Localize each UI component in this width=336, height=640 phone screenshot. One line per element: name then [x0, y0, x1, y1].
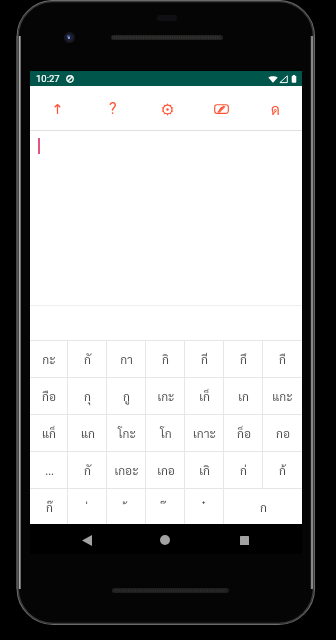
button[interactable]: กา [107, 341, 146, 377]
staticText: เกะ [157, 388, 175, 404]
staticText: ? [109, 99, 117, 118]
staticText: ก่ [240, 462, 247, 478]
button[interactable]: กุ [68, 378, 107, 414]
button[interactable]: ก้ [263, 452, 302, 488]
staticText: กอ [276, 425, 290, 441]
staticText: ก็อ [237, 425, 251, 441]
staticText: กู [123, 388, 130, 404]
button[interactable]: Back [77, 530, 97, 550]
button[interactable]: เก็ [185, 378, 224, 414]
button[interactable]: Settings [140, 86, 194, 130]
staticText: ก [260, 499, 267, 515]
staticText: กั [84, 351, 91, 367]
staticText: ด [271, 99, 280, 118]
button[interactable]: เกะ [146, 378, 185, 414]
button[interactable]: ๊ [146, 489, 185, 525]
staticText: เกอะ [114, 462, 139, 478]
button[interactable]: Help [85, 86, 140, 130]
staticText: แก็ [42, 425, 56, 441]
button[interactable]: ้ [107, 489, 146, 525]
button[interactable]: กือ [30, 378, 68, 414]
button[interactable]: กั [68, 452, 107, 488]
button[interactable]: เกาะ [185, 415, 224, 451]
staticText: โกะ [118, 425, 136, 441]
staticText: กือ [42, 388, 56, 404]
staticText: แกะ [272, 388, 293, 404]
button[interactable]: เก [224, 378, 263, 414]
button[interactable]: Thai input [248, 86, 302, 130]
button[interactable]: ก่ [224, 452, 263, 488]
button[interactable]: ๋ [185, 489, 224, 525]
button[interactable]: Keyboard layout [194, 86, 248, 130]
staticText: ก๊ [46, 499, 53, 515]
button[interactable]: กื [263, 341, 302, 377]
button[interactable]: ก [224, 489, 302, 525]
staticText: กึ [240, 351, 247, 367]
staticText: กุ [84, 388, 91, 404]
button[interactable]: … [30, 452, 68, 488]
staticText: กี [201, 351, 208, 367]
button[interactable]: Home [155, 530, 175, 550]
button[interactable]: เกอะ [107, 452, 146, 488]
button[interactable]: กั [68, 341, 107, 377]
staticText: แก [81, 425, 95, 441]
button[interactable]: Recent apps [234, 530, 254, 550]
button[interactable]: เกอ [146, 452, 185, 488]
button[interactable]: กู [107, 378, 146, 414]
button[interactable]: ่ [68, 489, 107, 525]
staticText: เก [238, 388, 249, 404]
staticText: เก็ [199, 388, 210, 404]
button[interactable]: โก [146, 415, 185, 451]
staticText: โก [160, 425, 172, 441]
button[interactable]: ก็อ [224, 415, 263, 451]
staticText: กา [120, 351, 133, 367]
staticText: ก้ [279, 462, 286, 478]
button[interactable]: แกะ [263, 378, 302, 414]
staticText: เกอ [157, 462, 175, 478]
staticText: … [45, 462, 54, 478]
button[interactable]: กิ [146, 341, 185, 377]
staticText: 10:27 [36, 73, 60, 84]
button[interactable]: Shift [30, 86, 85, 130]
button[interactable]: โกะ [107, 415, 146, 451]
staticText: กั [84, 462, 91, 478]
staticText: เกาะ [193, 425, 216, 441]
staticText: กิ [162, 351, 169, 367]
staticText: กะ [42, 351, 56, 367]
staticText: เกิ [199, 462, 210, 478]
button[interactable]: เกิ [185, 452, 224, 488]
button[interactable]: แก [68, 415, 107, 451]
staticText: กื [279, 351, 286, 367]
button[interactable]: กึ [224, 341, 263, 377]
button[interactable]: ก๊ [30, 489, 68, 525]
button[interactable]: แก็ [30, 415, 68, 451]
button[interactable]: กี [185, 341, 224, 377]
button[interactable]: กอ [263, 415, 302, 451]
button[interactable]: กะ [30, 341, 68, 377]
